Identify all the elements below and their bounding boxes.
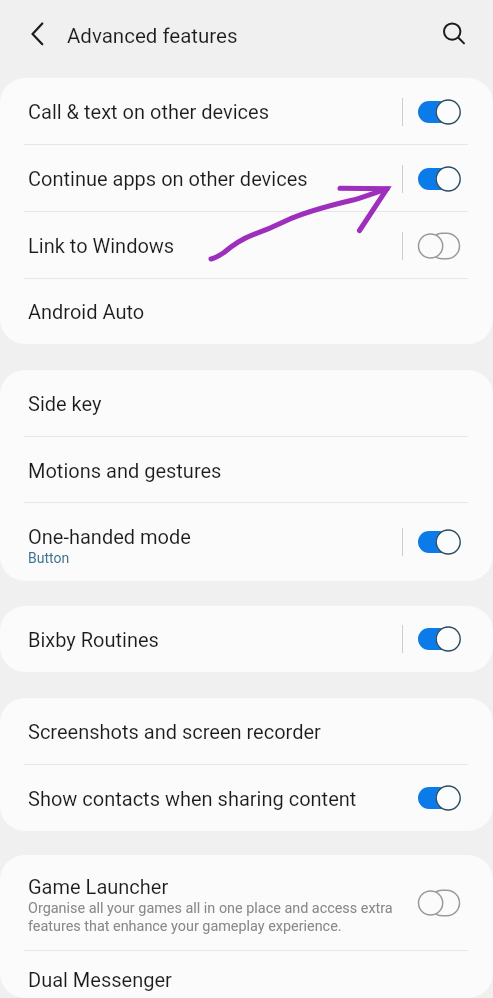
button[interactable]: Switch off — [418, 233, 461, 259]
button[interactable]: Screenshots and screen recorder — [0, 698, 493, 765]
staticText: Button — [28, 550, 70, 566]
staticText: Organise all your games all in one place… — [28, 900, 393, 935]
button[interactable]: Switch on — [418, 626, 461, 652]
staticText: Screenshots and screen recorder — [28, 720, 321, 743]
staticText: Advanced features — [67, 24, 238, 48]
button[interactable]: Game Launcher — [0, 855, 493, 951]
button[interactable]: Dual Messenger — [0, 951, 493, 998]
button[interactable]: Search — [435, 21, 471, 57]
button[interactable]: Motions and gestures — [0, 437, 493, 503]
button[interactable]: Switch on — [418, 785, 461, 811]
staticText: Call & text on other devices — [28, 100, 269, 123]
staticText: Continue apps on other devices — [28, 167, 308, 190]
button[interactable]: Switch on — [418, 529, 461, 555]
staticText: Side key — [28, 392, 102, 415]
button[interactable]: One-handed mode — [0, 503, 493, 581]
staticText: Android Auto — [28, 300, 145, 323]
button[interactable]: Continue apps on other devices — [0, 145, 493, 212]
staticText: Link to Windows — [28, 234, 175, 257]
staticText: Show contacts when sharing content — [28, 787, 357, 810]
button[interactable]: Show contacts when sharing content — [0, 765, 493, 831]
button[interactable]: Switch off — [418, 890, 461, 916]
button[interactable]: Bixby Routines — [0, 606, 493, 672]
staticText: Motions and gestures — [28, 459, 222, 482]
button[interactable]: Call & text on other devices — [0, 78, 493, 145]
button[interactable]: Switch on — [418, 99, 461, 125]
button[interactable]: Side key — [0, 370, 493, 437]
staticText: Game Launcher — [28, 875, 169, 898]
staticText: Bixby Routines — [28, 628, 159, 651]
button[interactable]: Android Auto — [0, 279, 493, 344]
staticText: One-handed mode — [28, 525, 191, 548]
button[interactable]: Back — [18, 21, 54, 57]
button[interactable]: Switch on — [418, 166, 461, 192]
button[interactable]: Link to Windows — [0, 212, 493, 279]
staticText: Dual Messenger — [28, 968, 172, 991]
